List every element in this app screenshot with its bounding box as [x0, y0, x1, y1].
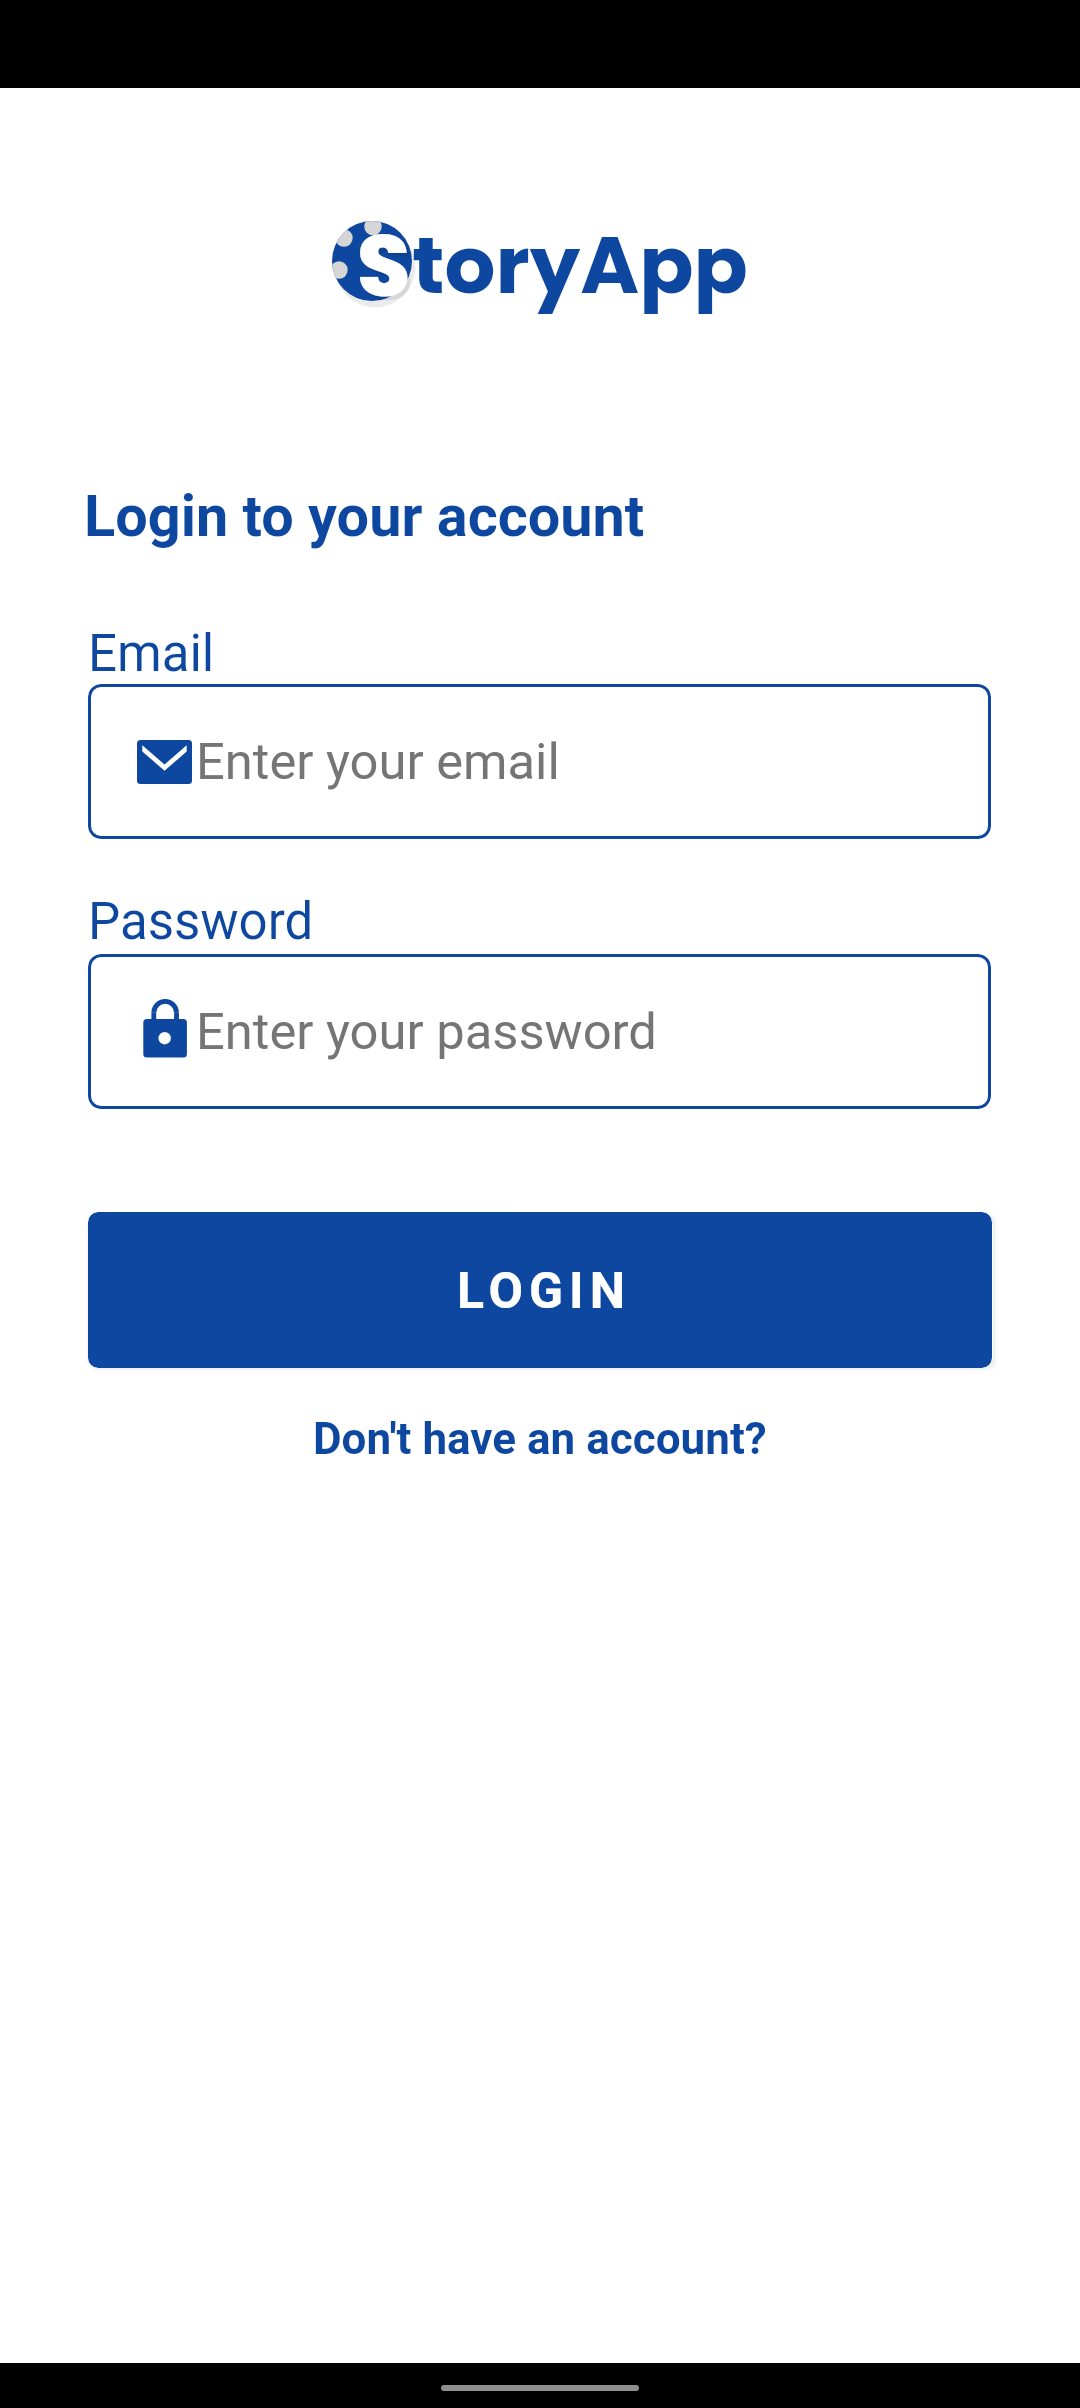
staticText: S [357, 206, 411, 326]
staticText: Email [88, 624, 215, 684]
staticText: toryApp [412, 209, 748, 321]
other: StoryApp logo [332, 221, 412, 301]
staticText: Enter your password [196, 1002, 657, 1061]
staticText: S [360, 210, 414, 330]
button[interactable]: Don't have an account? [313, 1413, 767, 1465]
staticText: Don't have an account? [313, 1413, 767, 1465]
button[interactable]: Enter your email [88, 684, 991, 839]
staticText: Password [88, 892, 314, 952]
staticText: LOGIN [457, 1262, 632, 1321]
staticText: Login to your account [84, 483, 645, 551]
button[interactable]: LOGIN [88, 1212, 992, 1368]
button[interactable]: Enter your password [88, 954, 991, 1109]
staticText: Enter your email [196, 732, 560, 791]
